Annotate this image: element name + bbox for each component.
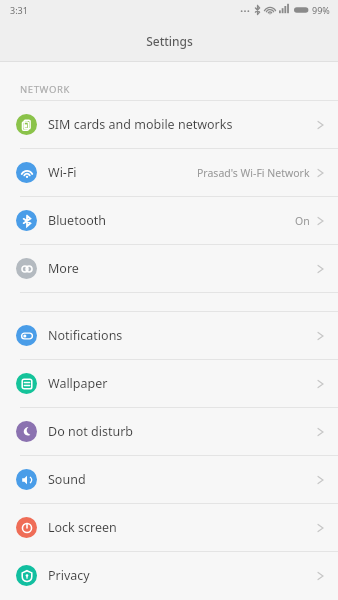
- button[interactable]: Wi-Fi: [0, 149, 338, 196]
- staticText: Privacy: [48, 567, 90, 584]
- button[interactable]: SIM cards and mobile networks: [0, 101, 338, 148]
- staticText: On: [295, 214, 310, 228]
- staticText: Wi-Fi: [48, 164, 77, 181]
- button[interactable]: Sound: [0, 456, 338, 503]
- staticText: Bluetooth: [48, 212, 107, 229]
- staticText: Notifications: [48, 327, 123, 344]
- staticText: Settings: [146, 33, 193, 49]
- staticText: Prasad's Wi-Fi Network: [197, 166, 310, 180]
- button[interactable]: Bluetooth: [0, 197, 338, 244]
- button[interactable]: More: [0, 245, 338, 292]
- staticText: 99%: [312, 4, 330, 16]
- button[interactable]: Notifications: [0, 312, 338, 359]
- button[interactable]: Do not disturb: [0, 408, 338, 455]
- button[interactable]: Lock screen: [0, 504, 338, 551]
- button[interactable]: Privacy: [0, 552, 338, 599]
- staticText: NETWORK: [20, 83, 70, 96]
- staticText: 3:31: [10, 4, 28, 16]
- staticText: More: [48, 260, 79, 277]
- staticText: Sound: [48, 471, 86, 488]
- staticText: Lock screen: [48, 519, 117, 536]
- staticText: Wallpaper: [48, 375, 108, 392]
- button[interactable]: Wallpaper: [0, 360, 338, 407]
- staticText: Do not disturb: [48, 423, 133, 440]
- staticText: SIM cards and mobile networks: [48, 116, 233, 133]
